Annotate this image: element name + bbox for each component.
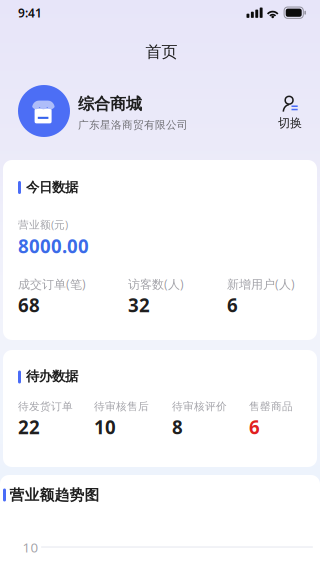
staticText: 6 — [227, 292, 238, 317]
staticText: 广东星洛商贸有限公司 — [78, 118, 188, 132]
button[interactable]: 切换 — [269, 91, 311, 135]
staticText: 8 — [172, 414, 183, 439]
staticText: 售罄商品 — [249, 400, 293, 413]
staticText: 22 — [18, 414, 40, 439]
staticText: 待审核评价 — [172, 400, 227, 413]
staticText: 10 — [22, 538, 38, 556]
staticText: 访客数(人) — [128, 276, 184, 292]
staticText: 新增用户(人) — [227, 276, 295, 292]
staticText: 今日数据 — [26, 179, 78, 195]
staticText: 待发货订单 — [18, 400, 73, 413]
staticText: 10 — [94, 414, 116, 439]
staticText: 首页 — [145, 42, 177, 62]
staticText: 8000.00 — [18, 233, 89, 258]
staticText: 待审核售后 — [94, 400, 149, 413]
staticText: 成交订单(笔) — [18, 276, 86, 292]
staticText: 切换 — [278, 116, 302, 130]
staticText: 32 — [128, 292, 150, 317]
staticText: 68 — [18, 292, 40, 317]
staticText: 待办数据 — [26, 368, 78, 384]
staticText: 营业额趋势图 — [9, 486, 99, 504]
staticText: 综合商城 — [78, 94, 142, 114]
staticText: 营业额(元) — [18, 217, 68, 232]
staticText: 6 — [249, 414, 260, 439]
staticText: 9:41 — [18, 5, 42, 21]
